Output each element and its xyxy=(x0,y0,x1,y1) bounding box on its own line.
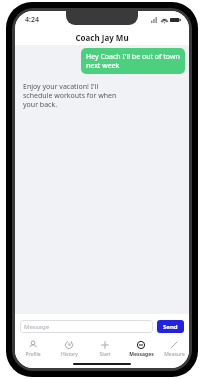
staticText: Measure xyxy=(164,351,185,358)
other: History xyxy=(64,340,74,350)
other: Measure xyxy=(169,340,179,350)
staticText: Start xyxy=(99,351,111,358)
staticText: Messages xyxy=(129,351,154,358)
button[interactable]: Start xyxy=(87,338,123,360)
button[interactable]: Enjoy your vacation! I'll schedule worko… xyxy=(20,80,124,111)
button[interactable]: Measure xyxy=(159,338,189,360)
button[interactable]: History xyxy=(51,338,87,360)
button[interactable]: Messages xyxy=(123,338,159,360)
staticText: Hey Coach I'll be out of town next week xyxy=(86,52,180,70)
staticText: Coach Jay Mu xyxy=(75,32,129,43)
button[interactable]: Hey Coach I'll be out of town next week xyxy=(81,48,185,74)
staticText: Send xyxy=(163,323,178,331)
button[interactable]: Send xyxy=(157,320,184,333)
other: Start xyxy=(100,340,110,350)
staticText: History xyxy=(61,351,78,358)
staticText: Message xyxy=(24,323,50,331)
other: Profile xyxy=(28,340,38,350)
staticText: 4:24 xyxy=(25,15,39,25)
staticText: Profile xyxy=(25,351,41,358)
other: Messages xyxy=(136,340,146,350)
button[interactable]: Profile xyxy=(15,338,51,360)
staticText: Enjoy your vacation! I'll schedule worko… xyxy=(23,82,121,109)
button[interactable]: Message xyxy=(20,320,153,333)
